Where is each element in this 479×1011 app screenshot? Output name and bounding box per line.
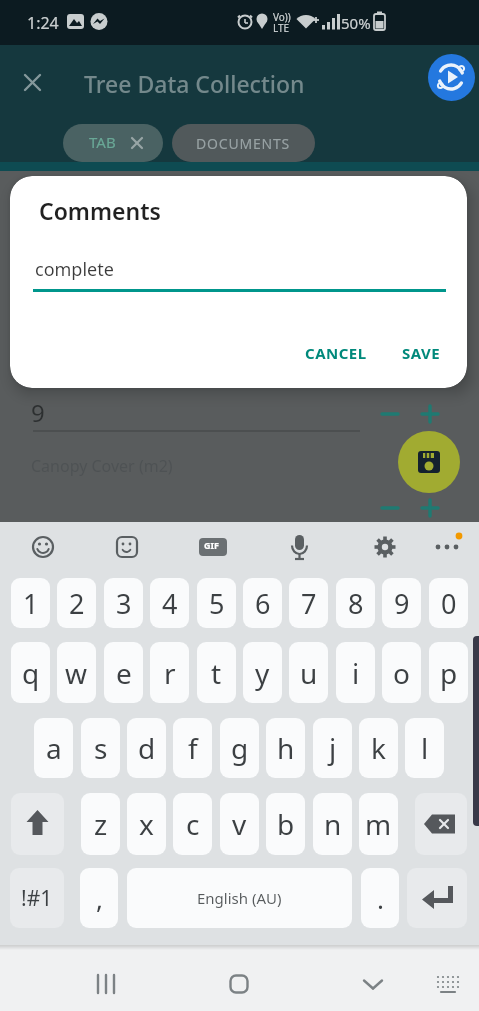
- button[interactable]: q: [11, 642, 50, 703]
- button[interactable]: l: [405, 718, 444, 778]
- staticText: s: [94, 729, 108, 767]
- button[interactable]: [407, 868, 467, 928]
- button[interactable]: [374, 492, 406, 524]
- button[interactable]: x: [127, 793, 166, 855]
- staticText: 0: [441, 585, 457, 622]
- button[interactable]: [427, 963, 469, 1005]
- button[interactable]: 7: [289, 578, 328, 628]
- button[interactable]: [279, 527, 319, 567]
- button[interactable]: [218, 963, 260, 1005]
- button[interactable]: 6: [243, 578, 282, 628]
- button[interactable]: y: [243, 642, 282, 703]
- button[interactable]: i: [336, 642, 375, 703]
- staticText: 7: [301, 585, 317, 622]
- staticText: English (AU): [197, 888, 282, 908]
- staticText: Canopy Cover (m2): [31, 455, 173, 477]
- staticText: .: [377, 881, 384, 916]
- staticText: Comments: [39, 195, 161, 226]
- staticText: c: [186, 805, 200, 843]
- staticText: d: [138, 729, 156, 767]
- button[interactable]: 5: [197, 578, 236, 628]
- button[interactable]: DOCUMENTS: [172, 124, 315, 162]
- staticText: j: [329, 729, 337, 767]
- button[interactable]: c: [173, 793, 212, 855]
- staticText: LTE: [273, 21, 290, 35]
- button[interactable]: s: [81, 718, 120, 778]
- staticText: Vo)): [273, 10, 291, 24]
- button[interactable]: 4: [150, 578, 189, 628]
- button[interactable]: r: [150, 642, 189, 703]
- button[interactable]: 9: [382, 578, 421, 628]
- staticText: v: [232, 805, 247, 843]
- button[interactable]: [85, 963, 127, 1005]
- staticText: t: [211, 654, 222, 692]
- staticText: l: [421, 729, 429, 767]
- button[interactable]: p: [429, 642, 468, 703]
- staticText: h: [277, 729, 295, 767]
- button[interactable]: !#1: [10, 868, 64, 928]
- staticText: f: [188, 729, 198, 767]
- button[interactable]: f: [173, 718, 212, 778]
- button[interactable]: [365, 527, 405, 567]
- button[interactable]: English (AU): [127, 868, 352, 928]
- staticText: a: [46, 729, 62, 767]
- button[interactable]: [352, 963, 394, 1005]
- button[interactable]: t: [197, 642, 236, 703]
- button[interactable]: [414, 398, 446, 430]
- staticText: u: [300, 654, 318, 692]
- button[interactable]: 3: [104, 578, 143, 628]
- staticText: i: [352, 654, 360, 692]
- button[interactable]: a: [34, 718, 73, 778]
- button[interactable]: n: [313, 793, 352, 855]
- button[interactable]: b: [266, 793, 305, 855]
- button[interactable]: e: [104, 642, 143, 703]
- button[interactable]: j: [313, 718, 352, 778]
- button[interactable]: 2: [57, 578, 96, 628]
- staticText: Tree Data Collection: [84, 68, 305, 99]
- button[interactable]: [374, 398, 406, 430]
- staticText: n: [324, 805, 342, 843]
- button[interactable]: [428, 54, 475, 101]
- button[interactable]: v: [220, 793, 259, 855]
- button[interactable]: .: [361, 868, 399, 928]
- button[interactable]: o: [382, 642, 421, 703]
- staticText: 6: [255, 585, 271, 622]
- staticText: k: [371, 729, 386, 767]
- staticText: 5: [209, 585, 225, 622]
- button[interactable]: d: [127, 718, 166, 778]
- button[interactable]: ,: [80, 868, 118, 928]
- button[interactable]: [23, 527, 63, 567]
- button[interactable]: [33, 246, 446, 292]
- staticText: 50%: [341, 13, 371, 33]
- button[interactable]: 1: [11, 578, 50, 628]
- staticText: ,: [96, 881, 103, 916]
- staticText: x: [139, 805, 154, 843]
- button[interactable]: CANCEL: [294, 334, 378, 372]
- button[interactable]: [414, 492, 446, 524]
- button[interactable]: [398, 431, 460, 493]
- button[interactable]: g: [220, 718, 259, 778]
- staticText: r: [164, 654, 176, 692]
- button[interactable]: w: [57, 642, 96, 703]
- staticText: m: [365, 805, 392, 843]
- button[interactable]: k: [359, 718, 398, 778]
- button[interactable]: [11, 793, 64, 855]
- button[interactable]: [415, 793, 467, 855]
- button[interactable]: 0: [429, 578, 468, 628]
- staticText: DOCUMENTS: [196, 134, 291, 153]
- button[interactable]: z: [81, 793, 120, 855]
- button[interactable]: [107, 527, 147, 567]
- staticText: 4: [162, 585, 178, 622]
- button[interactable]: [427, 527, 467, 567]
- button[interactable]: [193, 527, 233, 567]
- button[interactable]: TAB: [63, 124, 163, 162]
- button[interactable]: SAVE: [386, 334, 456, 372]
- button[interactable]: [12, 62, 53, 103]
- button[interactable]: h: [266, 718, 305, 778]
- staticText: g: [231, 729, 249, 767]
- button[interactable]: 8: [336, 578, 375, 628]
- button[interactable]: u: [289, 642, 328, 703]
- staticText: 3: [116, 585, 132, 622]
- staticText: CANCEL: [305, 343, 367, 363]
- button[interactable]: m: [359, 793, 398, 855]
